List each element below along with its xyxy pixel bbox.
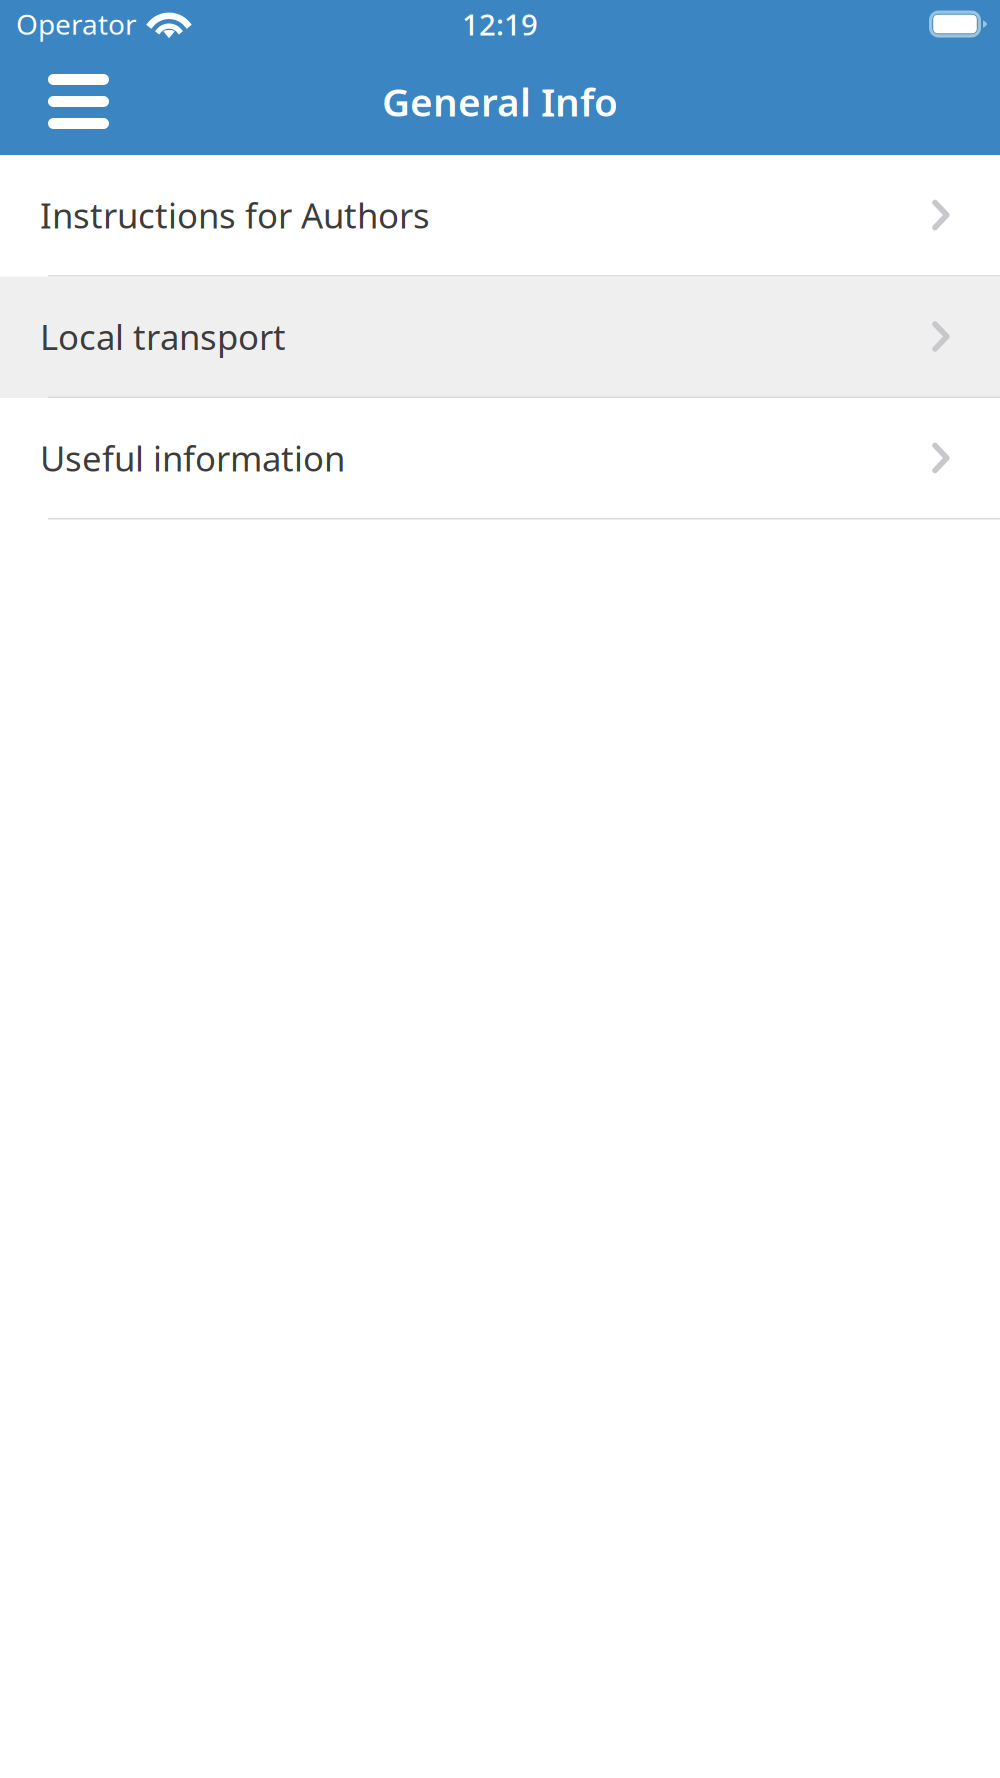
button[interactable]: Useful information bbox=[0, 398, 1000, 519]
staticText: 12:19 bbox=[462, 4, 538, 43]
staticText: Instructions for Authors bbox=[40, 192, 430, 238]
button[interactable]: Menu bbox=[24, 60, 133, 143]
button[interactable]: Instructions for Authors bbox=[0, 155, 1000, 276]
staticText: Local transport bbox=[40, 313, 286, 359]
staticText: General Info bbox=[382, 76, 618, 127]
button[interactable]: Local transport bbox=[0, 276, 1000, 398]
staticText: Useful information bbox=[40, 435, 345, 481]
staticText: Operator bbox=[16, 5, 137, 43]
